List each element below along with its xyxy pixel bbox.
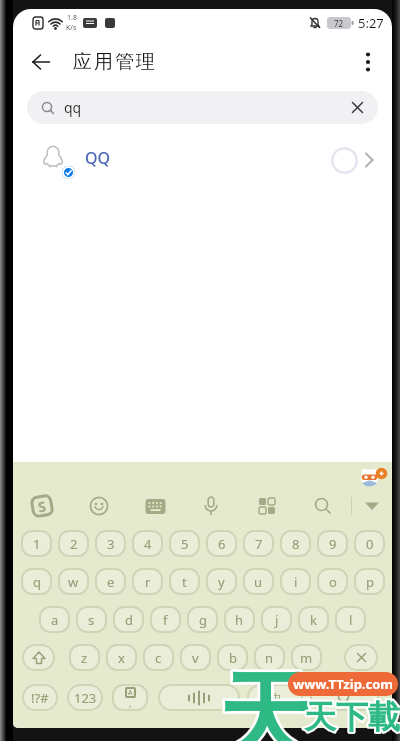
- button[interactable]: 7: [243, 530, 274, 557]
- staticText: ,: [129, 698, 132, 709]
- button[interactable]: qq: [27, 91, 378, 124]
- staticText: g: [199, 611, 207, 629]
- staticText: n: [265, 649, 274, 667]
- staticText: 5: [181, 535, 189, 553]
- button[interactable]: [22, 644, 55, 671]
- button[interactable]: a: [39, 606, 70, 633]
- staticText: l: [349, 611, 353, 629]
- staticText: 6: [218, 535, 226, 553]
- staticText: e: [107, 573, 115, 591]
- staticText: 4: [144, 535, 152, 553]
- staticText: QQ: [85, 147, 111, 169]
- button[interactable]: i: [280, 568, 311, 595]
- staticText: c: [155, 649, 162, 667]
- button[interactable]: [310, 684, 379, 711]
- button[interactable]: 5: [169, 530, 200, 557]
- button[interactable]: [183, 496, 239, 516]
- staticText: 123: [74, 689, 97, 707]
- button[interactable]: j: [261, 606, 292, 633]
- button[interactable]: 9: [317, 530, 348, 557]
- staticText: t: [182, 573, 187, 591]
- button[interactable]: [295, 497, 351, 515]
- staticText: s: [88, 611, 95, 629]
- staticText: h: [235, 611, 244, 629]
- button[interactable]: QQ: [13, 134, 392, 186]
- staticText: 2: [70, 535, 78, 553]
- button[interactable]: 123: [67, 684, 103, 711]
- staticText: o: [329, 573, 337, 591]
- staticText: qq: [64, 98, 82, 117]
- button[interactable]: k: [298, 606, 329, 633]
- button[interactable]: 中: [247, 684, 303, 711]
- button[interactable]: g: [187, 606, 218, 633]
- staticText: 1.8: [67, 13, 77, 23]
- button[interactable]: [352, 489, 392, 523]
- staticText: 1: [33, 535, 41, 553]
- button[interactable]: v: [180, 644, 211, 671]
- staticText: 天: [218, 658, 312, 741]
- button[interactable]: p: [354, 568, 385, 595]
- staticText: 72: [334, 18, 344, 29]
- staticText: d: [125, 611, 133, 629]
- button[interactable]: [361, 51, 375, 73]
- button[interactable]: w: [58, 568, 89, 595]
- button[interactable]: l: [335, 606, 366, 633]
- button[interactable]: 6: [206, 530, 237, 557]
- staticText: v: [192, 649, 199, 667]
- staticText: y: [218, 573, 225, 591]
- staticText: m: [300, 649, 313, 667]
- staticText: 应用管理: [72, 50, 156, 74]
- staticText: f: [163, 611, 168, 629]
- button[interactable]: S: [13, 495, 70, 517]
- button[interactable]: [127, 498, 183, 515]
- staticText: 7: [255, 535, 263, 553]
- staticText: i: [294, 573, 298, 591]
- button[interactable]: b: [217, 644, 248, 671]
- button[interactable]: A: [112, 684, 148, 711]
- button[interactable]: s: [76, 606, 107, 633]
- button[interactable]: [344, 644, 378, 671]
- button[interactable]: !?#: [22, 684, 58, 711]
- button[interactable]: d: [113, 606, 144, 633]
- button[interactable]: e: [95, 568, 126, 595]
- staticText: u: [254, 573, 263, 591]
- staticText: 天: [218, 658, 312, 741]
- staticText: x: [118, 649, 125, 667]
- button[interactable]: 4: [132, 530, 163, 557]
- button[interactable]: h: [224, 606, 255, 633]
- staticText: !?#: [31, 689, 49, 707]
- button[interactable]: r: [132, 568, 163, 595]
- staticText: 0: [366, 535, 374, 553]
- button[interactable]: 8: [280, 530, 311, 557]
- button[interactable]: f: [150, 606, 181, 633]
- staticText: q: [33, 573, 41, 591]
- button[interactable]: z: [69, 644, 100, 671]
- button[interactable]: n: [254, 644, 285, 671]
- staticText: a: [51, 611, 59, 629]
- staticText: A: [128, 688, 133, 698]
- button[interactable]: [70, 496, 127, 516]
- staticText: j: [275, 611, 279, 629]
- staticText: z: [81, 649, 88, 667]
- staticText: p: [366, 573, 374, 591]
- button[interactable]: o: [317, 568, 348, 595]
- staticText: b: [229, 649, 237, 667]
- button[interactable]: [239, 497, 295, 515]
- button[interactable]: q: [21, 568, 52, 595]
- button[interactable]: www.TTzip.com: [288, 672, 398, 696]
- button[interactable]: u: [243, 568, 274, 595]
- staticText: www.TTzip.com: [293, 675, 394, 693]
- button[interactable]: y: [206, 568, 237, 595]
- button[interactable]: [30, 52, 52, 72]
- button[interactable]: [158, 684, 240, 711]
- button[interactable]: c: [143, 644, 174, 671]
- staticText: 3: [107, 535, 115, 553]
- button[interactable]: 3: [95, 530, 126, 557]
- staticText: 天下載: [304, 697, 400, 737]
- button[interactable]: x: [106, 644, 137, 671]
- button[interactable]: 2: [58, 530, 89, 557]
- button[interactable]: t: [169, 568, 200, 595]
- button[interactable]: m: [291, 644, 322, 671]
- button[interactable]: 1: [21, 530, 52, 557]
- button[interactable]: 0: [354, 530, 385, 557]
